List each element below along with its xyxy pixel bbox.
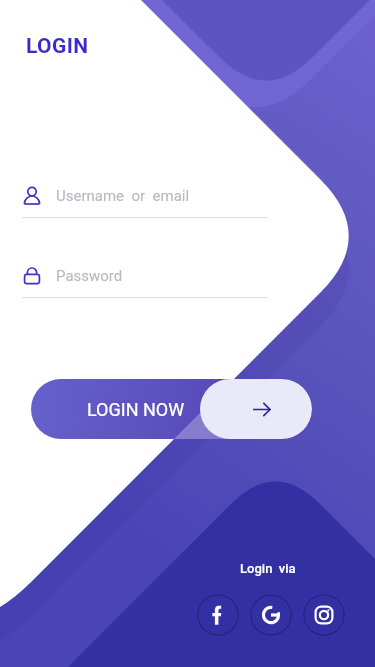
staticText: LOGIN — [26, 34, 89, 59]
staticText: Username or email — [56, 187, 190, 205]
staticText: LOGIN NOW — [87, 399, 185, 420]
other: Continue — [253, 401, 270, 418]
staticText: Login via — [240, 561, 296, 576]
button[interactable]: Login with Facebook — [197, 594, 239, 636]
button[interactable]: Continue — [31, 379, 312, 439]
button[interactable]: Login with Instagram — [303, 594, 345, 636]
button[interactable]: Login with Google — [250, 594, 292, 636]
staticText: Password — [56, 267, 123, 285]
